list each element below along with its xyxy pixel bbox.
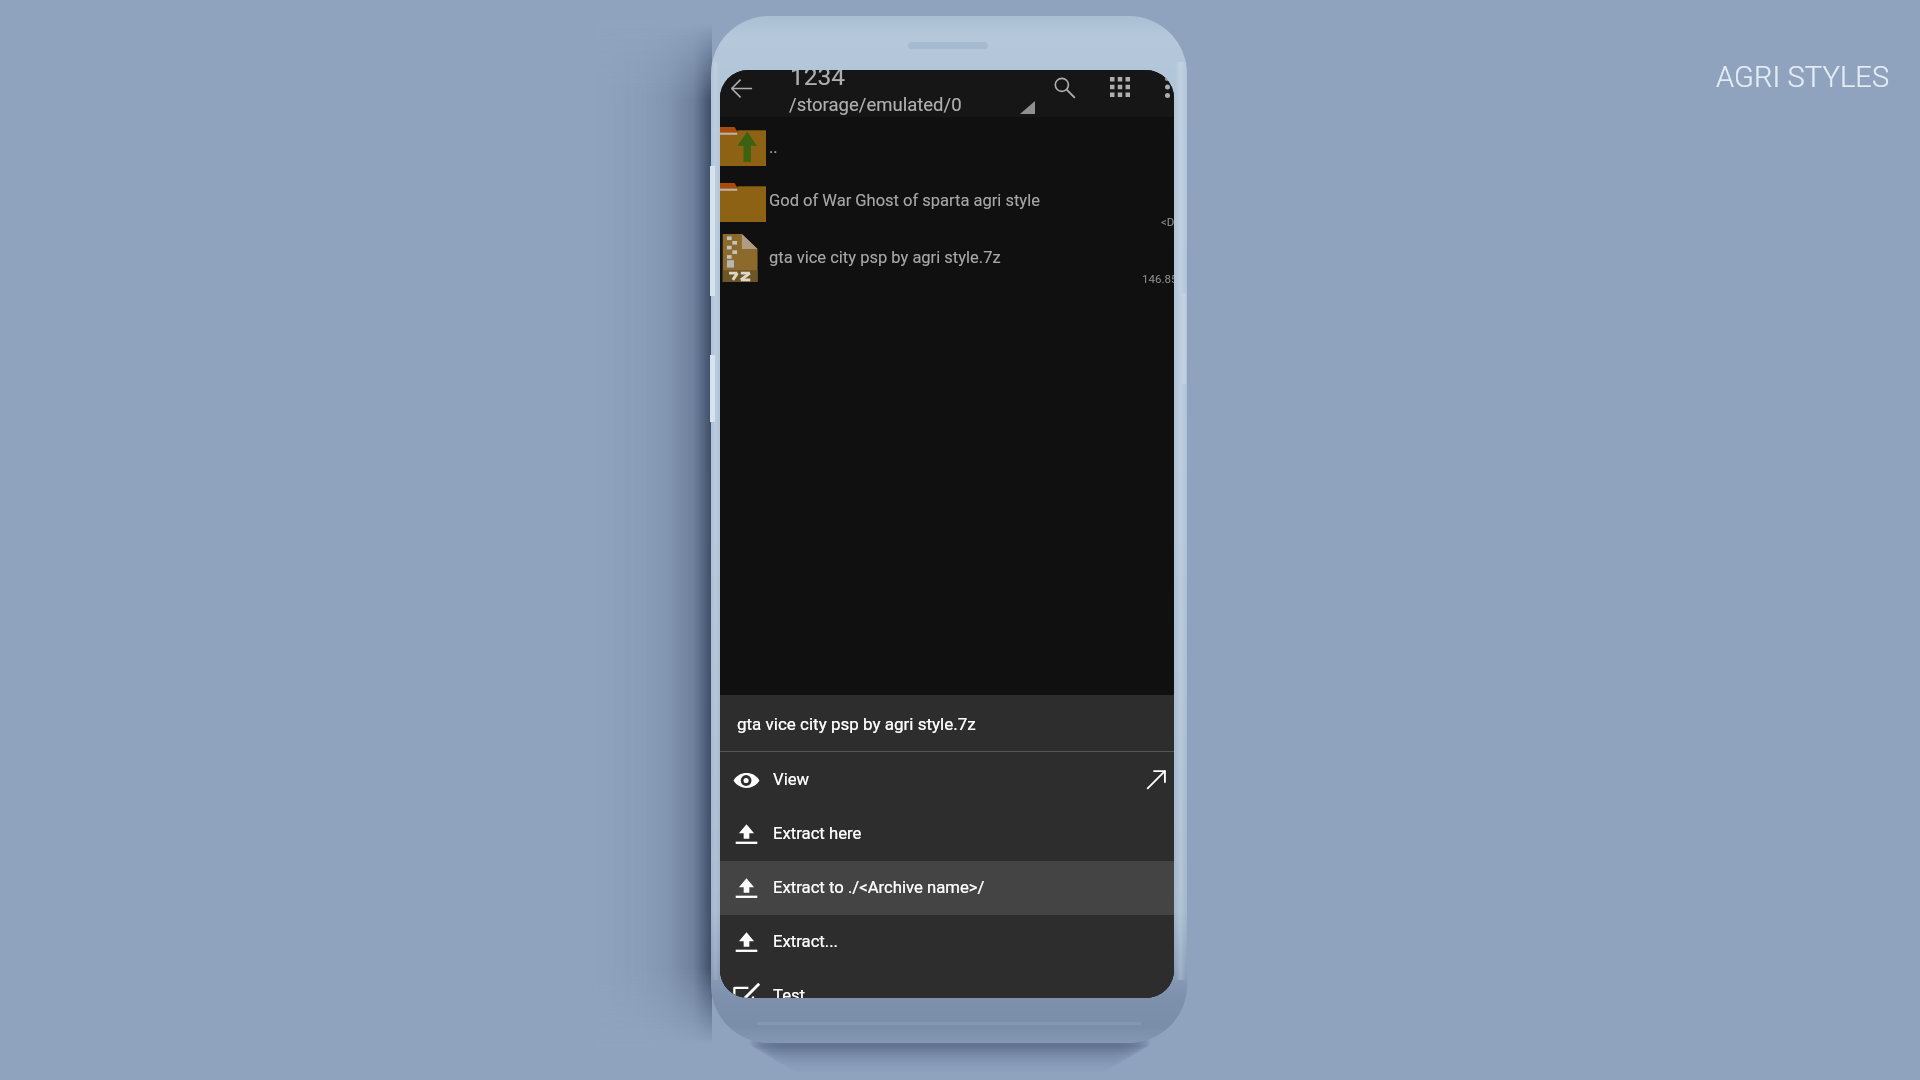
staticText: 146.85M	[1142, 272, 1174, 285]
button[interactable]: Back	[720, 70, 763, 110]
button[interactable]: More options	[1151, 70, 1174, 110]
button[interactable]	[720, 174, 1174, 229]
staticText: <DIR>	[1161, 215, 1174, 228]
button[interactable]: Extract to ./<Archive name>/	[720, 861, 1174, 915]
staticText: ..	[769, 138, 778, 157]
staticText: View	[773, 770, 810, 790]
staticText: Extract to ./<Archive name>/	[773, 878, 985, 898]
button[interactable]: Change path	[1006, 92, 1048, 120]
staticText: God of War Ghost of sparta agri style	[769, 191, 1040, 210]
button[interactable]: View	[720, 753, 1174, 807]
staticText: 1234	[790, 70, 846, 91]
button[interactable]: View mode	[1097, 70, 1143, 110]
staticText: AGRI STYLES	[1716, 60, 1890, 94]
staticText: gta vice city psp by agri style.7z	[737, 714, 976, 734]
button[interactable]	[720, 228, 1174, 283]
staticText: Extract...	[773, 932, 839, 952]
button[interactable]	[720, 118, 1174, 173]
staticText: Extract here	[773, 824, 862, 844]
staticText: gta vice city psp by agri style.7z	[769, 248, 1001, 267]
staticText: /storage/emulated/0	[789, 94, 962, 116]
button[interactable]: Extract here	[720, 807, 1174, 861]
button[interactable]: Search	[1041, 70, 1087, 110]
button[interactable]: Extract...	[720, 915, 1174, 969]
button[interactable]: Test	[720, 969, 1174, 998]
staticText: Test	[773, 986, 806, 998]
